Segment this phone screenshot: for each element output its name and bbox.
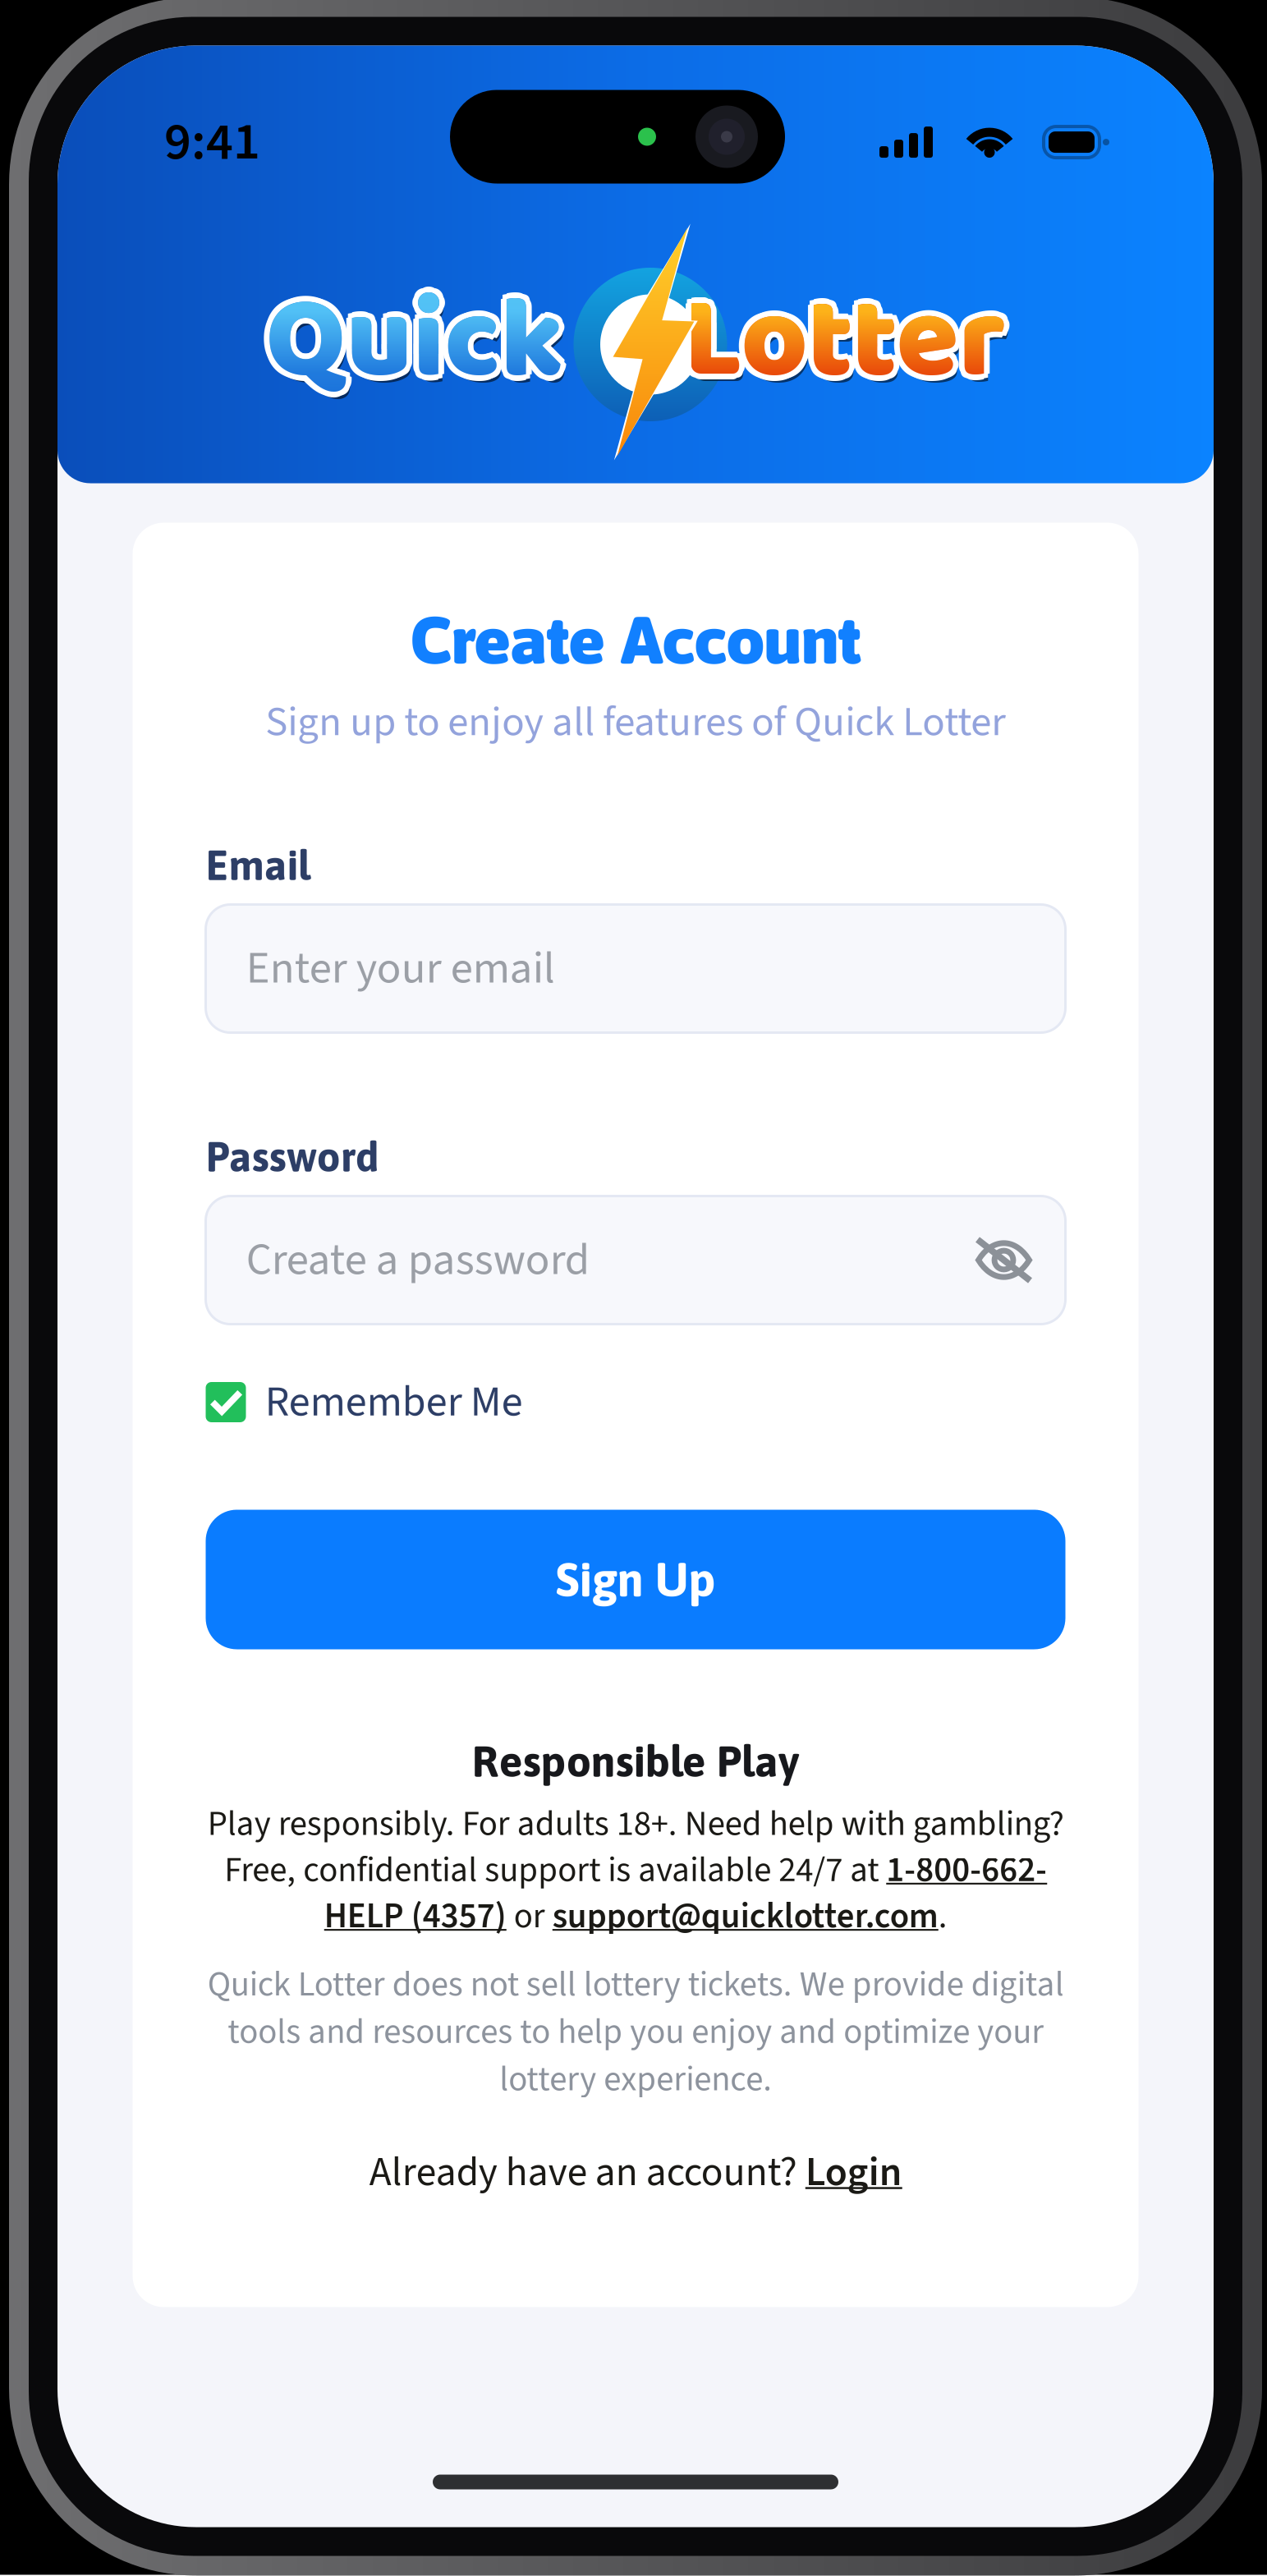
staticText: Quick [260, 251, 558, 433]
staticText: Create Account [410, 601, 861, 678]
staticText: Create a password [246, 1228, 589, 1292]
staticText: Lotter [688, 255, 1010, 437]
staticText: Quick [271, 251, 569, 433]
staticText: Quick [270, 258, 568, 441]
staticText: Lotter [679, 255, 1001, 437]
staticText: Lotter [688, 258, 1010, 441]
staticText: Quick [266, 245, 564, 427]
staticText: Play responsibly. For adults 18+. Need h… [207, 1800, 1064, 1941]
staticText: Enter your email [246, 937, 555, 1001]
staticText: Already have an account? Login [369, 2144, 902, 2200]
staticText: Quick [262, 255, 560, 437]
staticText: Lotter [689, 251, 1011, 433]
staticText: Sign up to enjoy all features of Quick L… [265, 693, 1006, 752]
staticText: Lotter [684, 257, 1005, 439]
staticText: Quick [266, 257, 564, 439]
staticText: Quick [266, 251, 564, 433]
staticText: Email [206, 841, 310, 889]
staticText: Sign Up [555, 1552, 716, 1606]
staticText: Lotter [684, 251, 1005, 433]
staticText: Quick [270, 255, 568, 437]
staticText: Lotter [684, 245, 1005, 427]
staticText: Lotter [684, 251, 1005, 433]
staticText: Remember Me [265, 1372, 523, 1433]
staticText: Quick [266, 251, 564, 433]
staticText: Lotter [679, 247, 1001, 429]
staticText: Quick Lotter does not sell lottery ticke… [207, 1959, 1064, 2104]
button[interactable]: Remember Me [206, 1377, 1065, 1428]
staticText: Quick [262, 247, 560, 429]
staticText: Responsible Play [472, 1736, 799, 1786]
button[interactable]: Already have an account? Login [369, 2153, 902, 2192]
button[interactable]: Sign Up [206, 1510, 1065, 1649]
staticText: 9:41 [164, 105, 260, 180]
staticText: Quick [270, 247, 568, 429]
staticText: Password [206, 1133, 379, 1181]
staticText: Lotter [688, 247, 1010, 429]
staticText: Lotter [678, 251, 1000, 433]
